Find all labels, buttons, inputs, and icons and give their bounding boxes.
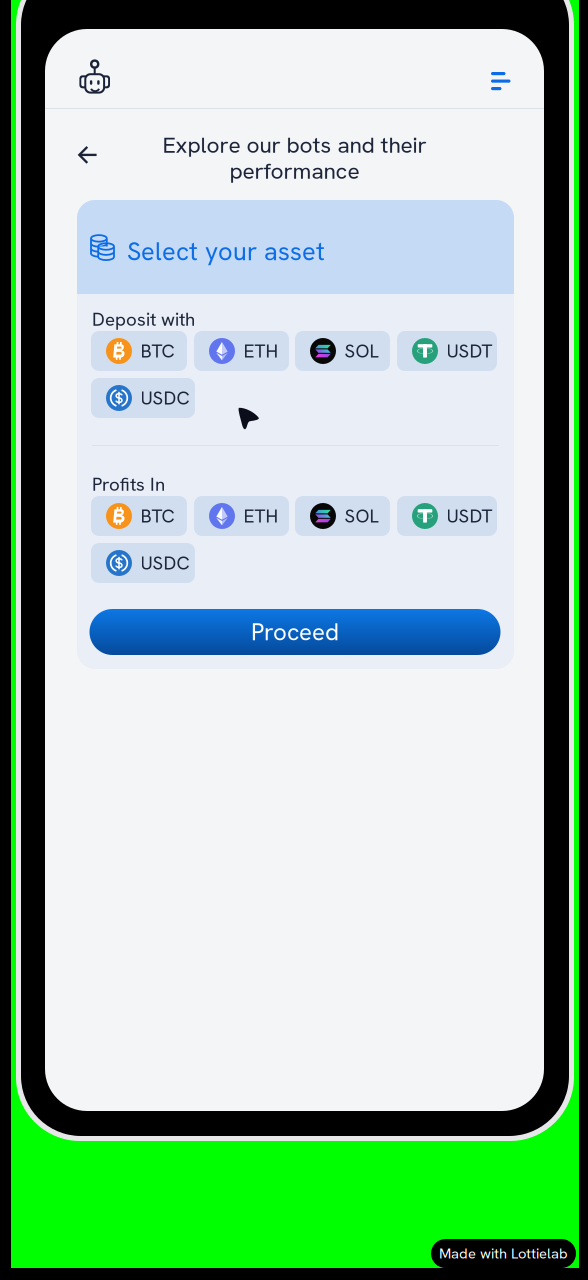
staticText: performance [229, 156, 359, 185]
button[interactable]: SOL [295, 496, 390, 536]
staticText: Explore our bots and their [162, 130, 426, 159]
staticText: SOL [344, 339, 378, 363]
button[interactable]: Back [69, 137, 106, 173]
staticText: ETH [243, 339, 278, 363]
button[interactable]: Menu [482, 63, 519, 99]
button[interactable]: Bots [71, 50, 118, 104]
staticText: Deposit with [92, 307, 195, 331]
button[interactable]: BTC [91, 331, 187, 371]
button[interactable]: Made with Lottielab [431, 1239, 576, 1268]
staticText: USDT [446, 339, 492, 363]
button[interactable]: Proceed [89, 609, 500, 655]
button[interactable]: ETH [194, 496, 289, 536]
staticText: BTC [140, 339, 174, 363]
button[interactable]: SOL [295, 331, 390, 371]
staticText: Proceed [251, 616, 339, 648]
staticText: USDT [446, 504, 492, 528]
staticText: Select your asset [127, 235, 325, 268]
staticText: USDC [140, 551, 189, 575]
button[interactable]: BTC [91, 496, 187, 536]
button[interactable]: USDT [397, 331, 497, 371]
staticText: USDC [140, 386, 189, 410]
staticText: BTC [140, 504, 174, 528]
staticText: ETH [243, 504, 278, 528]
button[interactable]: USDC [91, 543, 195, 583]
staticText: Profits In [92, 472, 165, 496]
button[interactable]: USDC [91, 378, 195, 418]
staticText: Made with Lottielab [439, 1244, 568, 1263]
button[interactable]: USDT [397, 496, 497, 536]
button[interactable]: ETH [194, 331, 289, 371]
staticText: SOL [344, 504, 378, 528]
